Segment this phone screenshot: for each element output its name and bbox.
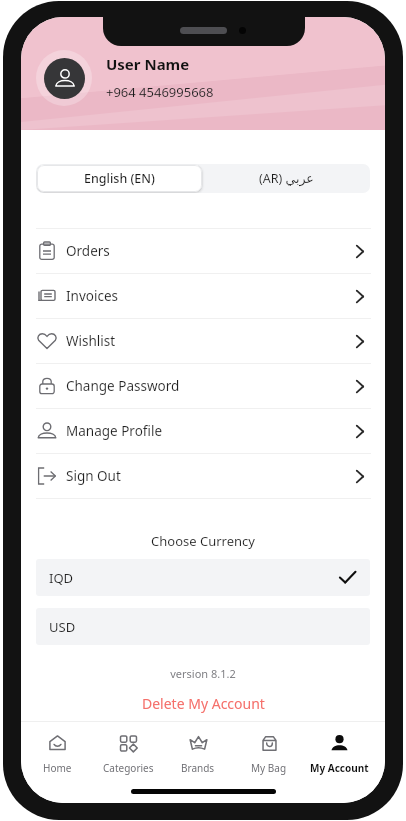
staticText: IQD	[49, 569, 74, 587]
button[interactable]: (AR) عربي	[203, 164, 370, 193]
button[interactable]: Change Password	[21, 364, 385, 409]
staticText: Wishlist	[66, 332, 116, 350]
button[interactable]: USD	[36, 608, 370, 645]
staticText: Categories	[103, 761, 154, 775]
button[interactable]: Categories	[93, 734, 163, 784]
button[interactable]: Delete My Account	[21, 694, 385, 713]
button[interactable]: English (EN)	[37, 165, 202, 192]
button[interactable]: Manage Profile	[21, 409, 385, 454]
button[interactable]: Wishlist	[21, 319, 385, 364]
staticText: Invoices	[66, 287, 118, 305]
staticText: English (EN)	[84, 170, 155, 187]
staticText: My Account	[310, 761, 369, 775]
button[interactable]: Sign Out	[21, 454, 385, 499]
staticText: Home	[43, 761, 72, 775]
button[interactable]: Brands	[163, 734, 233, 784]
button[interactable]: Orders	[21, 229, 385, 274]
staticText: Manage Profile	[66, 422, 163, 440]
button[interactable]: Home	[22, 734, 92, 784]
staticText: Delete My Account	[142, 694, 265, 713]
staticText: Brands	[181, 761, 215, 775]
staticText: version 8.1.2	[21, 666, 385, 681]
staticText: +964 4546995668	[106, 83, 214, 101]
button[interactable]: IQD	[36, 559, 370, 596]
staticText: My Bag	[251, 761, 287, 775]
staticText: USD	[49, 618, 76, 636]
button[interactable]: My Bag	[234, 734, 304, 784]
staticText: Orders	[66, 242, 110, 260]
staticText: Sign Out	[66, 467, 121, 485]
staticText: Choose Currency	[21, 532, 385, 550]
staticText: User Name	[106, 54, 190, 74]
staticText: (AR) عربي	[259, 170, 314, 187]
staticText: Change Password	[66, 377, 180, 395]
button[interactable]: My Account	[304, 734, 374, 784]
button[interactable]: Invoices	[21, 274, 385, 319]
